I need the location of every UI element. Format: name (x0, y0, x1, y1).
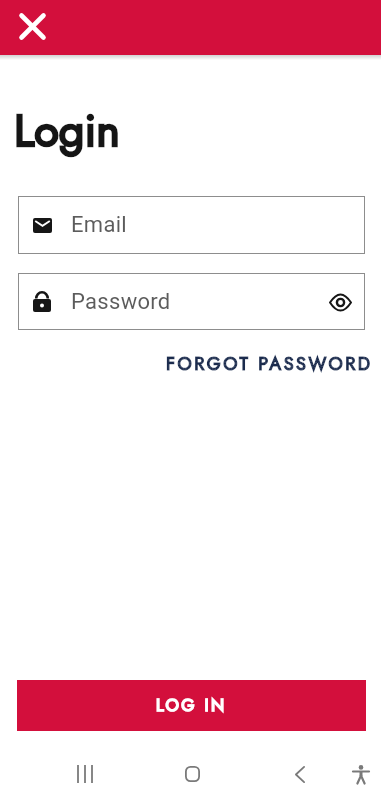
button[interactable]: Email (18, 196, 365, 254)
button[interactable]: LOG IN (17, 680, 366, 731)
staticText: Password (71, 289, 171, 315)
staticText: Email (71, 212, 127, 238)
button[interactable]: Password (18, 273, 365, 330)
staticText: Login (14, 98, 120, 163)
button[interactable] (65, 754, 105, 794)
button[interactable] (172, 754, 212, 794)
button[interactable] (341, 754, 381, 794)
staticText: FORGOT PASSWORD (166, 351, 373, 377)
button[interactable]: FORGOT PASSWORD (166, 351, 373, 377)
button[interactable] (280, 754, 320, 794)
button[interactable] (322, 284, 358, 320)
staticText: Login (14, 98, 120, 163)
button[interactable] (8, 2, 56, 50)
staticText: FORGOT PASSWORD (166, 351, 373, 377)
staticText: LOG IN (156, 693, 227, 718)
staticText: LOG IN (156, 693, 227, 718)
